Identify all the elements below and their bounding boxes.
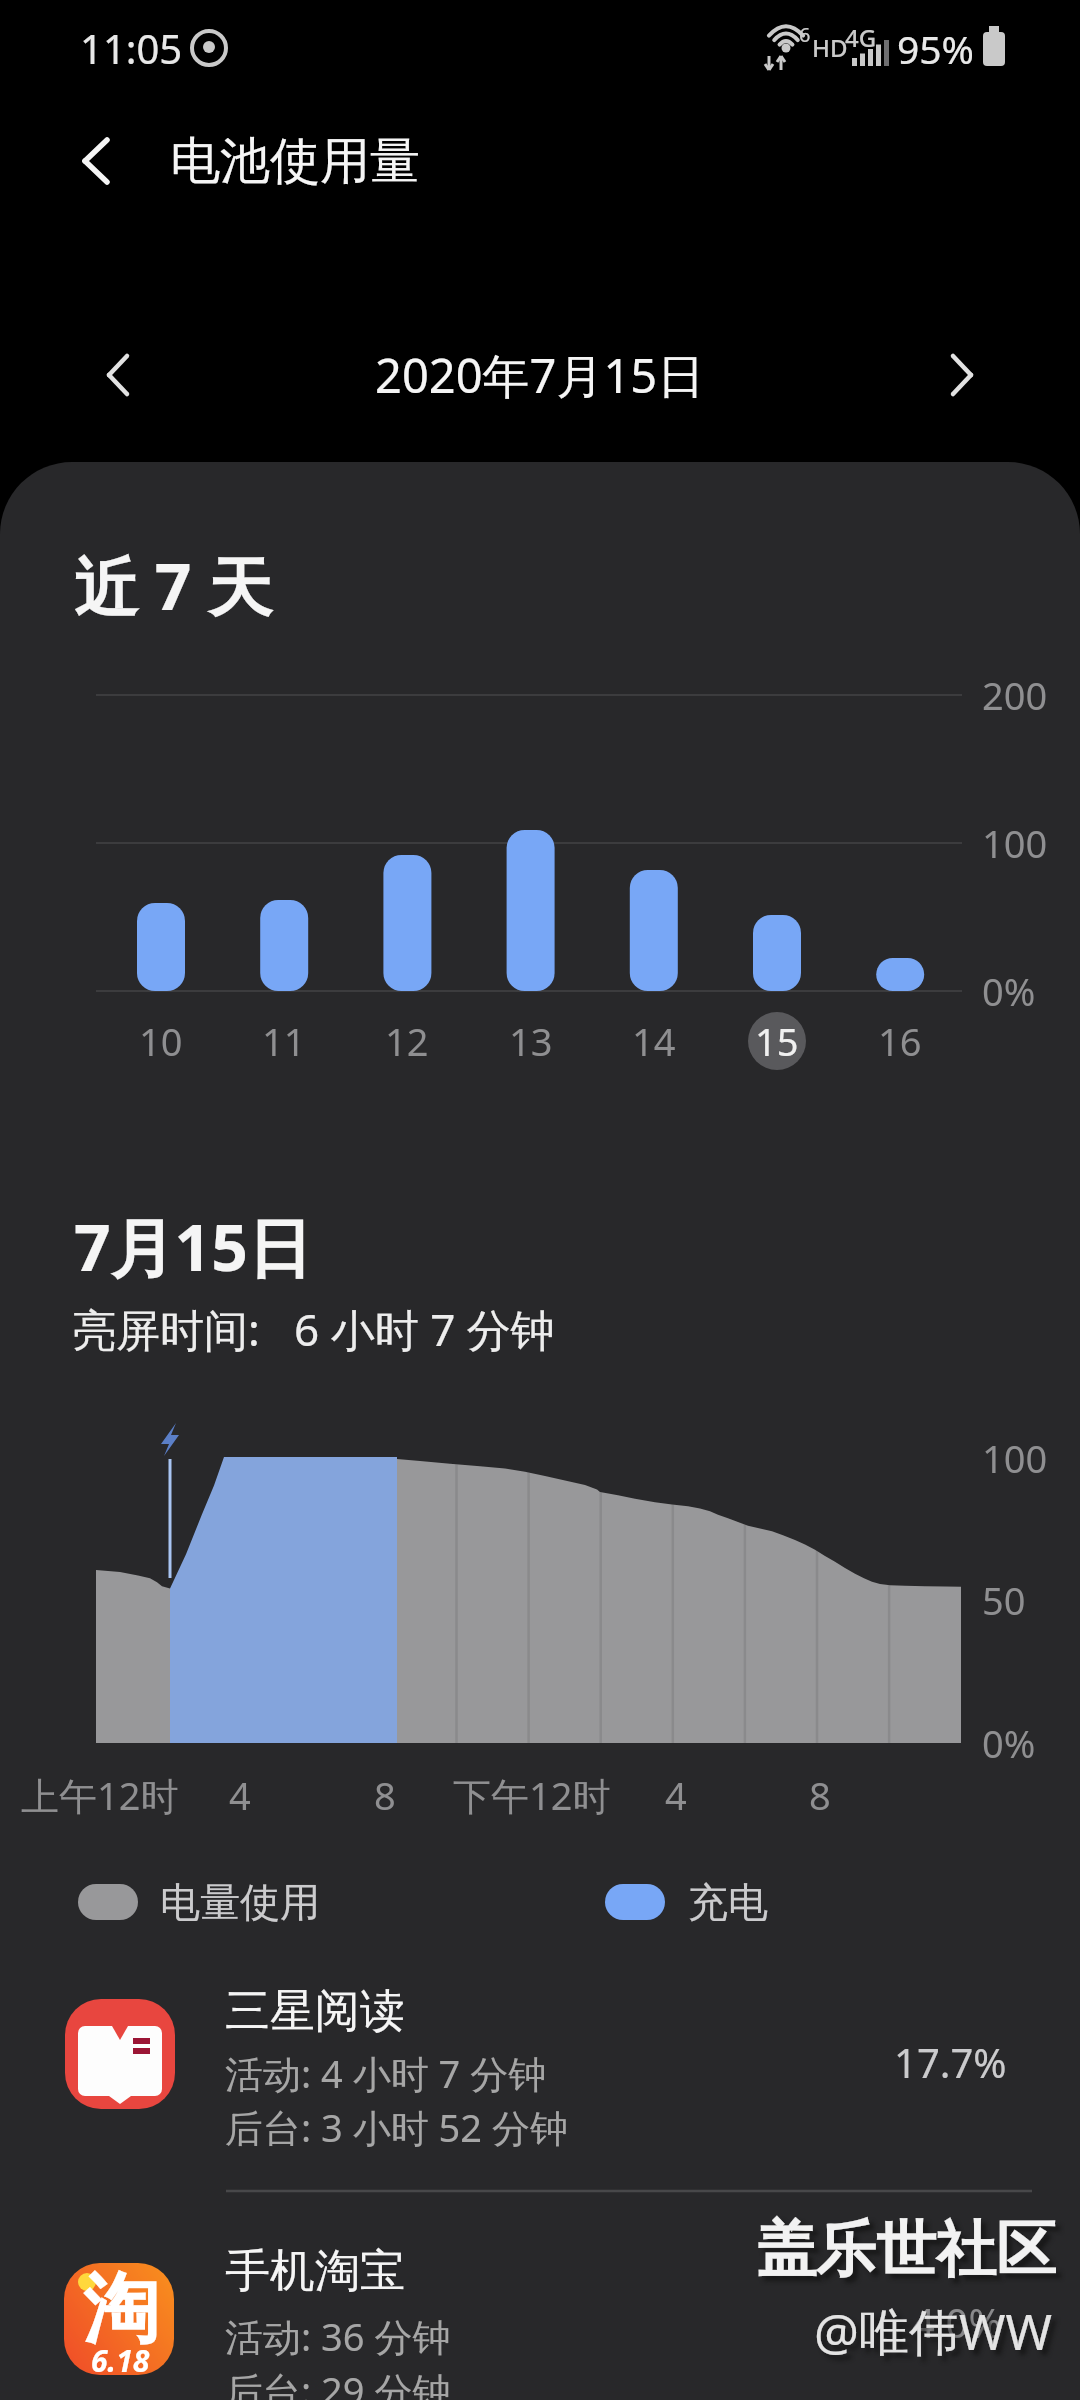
button[interactable] <box>80 340 160 410</box>
staticText: 后台: 3 小时 52 分钟 <box>225 2101 568 2153</box>
staticText: 95% <box>897 22 975 75</box>
staticText: 12 <box>385 1015 429 1067</box>
staticText: 15 <box>755 1015 799 1067</box>
staticText: 0% <box>982 1717 1036 1769</box>
button[interactable] <box>60 126 130 196</box>
staticText: 4 <box>665 1769 687 1821</box>
staticText: 4.0% <box>912 2295 1002 2349</box>
staticText: 16 <box>878 1015 922 1067</box>
staticText: 7月15日 <box>74 1203 312 1290</box>
staticText: 亮屏时间: 6 小时 7 分钟 <box>72 1299 555 1359</box>
staticText: 8 <box>374 1769 396 1821</box>
staticText: 200 <box>982 669 1048 721</box>
staticText: @唯伟WW <box>814 2297 1052 2365</box>
staticText: 2020年7月15日 <box>375 343 705 407</box>
staticText: HD <box>812 31 848 64</box>
staticText: 盖乐世社区 <box>756 2212 1056 2288</box>
button[interactable] <box>40 1975 1040 2155</box>
staticText: 8 <box>809 1769 831 1821</box>
staticText: 6 <box>799 21 811 48</box>
staticText: 电池使用量 <box>170 130 420 193</box>
staticText: 三星阅读 <box>225 1983 405 2040</box>
staticText: 活动: 4 小时 7 分钟 <box>225 2047 547 2099</box>
staticText: 淘 <box>83 2262 159 2358</box>
staticText: 手机淘宝 <box>225 2243 405 2300</box>
staticText: 4G <box>845 21 877 54</box>
staticText: 13 <box>509 1015 553 1067</box>
button[interactable] <box>920 340 1000 410</box>
staticText: 11:05 <box>80 21 183 75</box>
staticText: 50 <box>982 1574 1026 1626</box>
button[interactable] <box>40 2240 1040 2400</box>
staticText: 活动: 36 分钟 <box>225 2310 451 2362</box>
staticText: 充电 <box>688 1877 768 1927</box>
staticText: 0% <box>982 965 1036 1017</box>
staticText: 6.18 <box>91 2340 150 2381</box>
staticText: 100 <box>982 817 1048 869</box>
staticText: 4 <box>229 1769 251 1821</box>
staticText: 下午12时 <box>453 1769 611 1821</box>
staticText: 100 <box>982 1432 1048 1484</box>
staticText: 后台: 29 分钟 <box>225 2364 451 2400</box>
staticText: 10 <box>139 1015 183 1067</box>
staticText: 上午12时 <box>21 1769 179 1821</box>
staticText: 11 <box>262 1015 306 1067</box>
staticText: 电量使用 <box>160 1877 320 1927</box>
staticText: 14 <box>632 1015 676 1067</box>
staticText: 17.7% <box>894 2035 1007 2089</box>
staticText: 近 7 天 <box>74 542 272 629</box>
